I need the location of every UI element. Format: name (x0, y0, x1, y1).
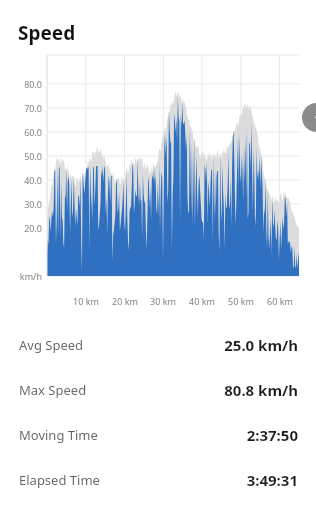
staticText: 30 km (143, 295, 183, 307)
staticText: 30.0 (8, 198, 42, 210)
staticText: 80.8 km/h (224, 380, 298, 400)
staticText: 50 km (221, 295, 261, 307)
staticText: 60 km (260, 295, 300, 307)
staticText: Elapsed Time (19, 471, 100, 489)
button[interactable]: Moving Time (0, 412, 316, 457)
staticText: Avg Speed (19, 336, 84, 354)
staticText: 20.0 (8, 222, 42, 234)
staticText: 40.0 (8, 174, 42, 186)
staticText: 80.0 (8, 78, 42, 90)
staticText: 20 km (105, 295, 145, 307)
button[interactable]: Elapsed Time (0, 457, 316, 502)
staticText: km/h (8, 270, 42, 282)
staticText: 70.0 (8, 102, 42, 114)
staticText: Max Speed (19, 381, 87, 399)
staticText: 10 km (66, 295, 106, 307)
staticText: Moving Time (19, 426, 98, 444)
staticText: 40 km (182, 295, 222, 307)
staticText: 25.0 km/h (224, 335, 298, 355)
staticText: 2:37:50 (246, 425, 298, 445)
staticText: Speed (18, 20, 76, 46)
staticText: 3:49:31 (246, 470, 298, 490)
button[interactable]: Avg Speed (0, 323, 316, 367)
staticText: 60.0 (8, 126, 42, 138)
staticText: 50.0 (8, 150, 42, 162)
button[interactable]: Max Speed (0, 367, 316, 412)
button[interactable]: Previous chart (302, 103, 316, 132)
